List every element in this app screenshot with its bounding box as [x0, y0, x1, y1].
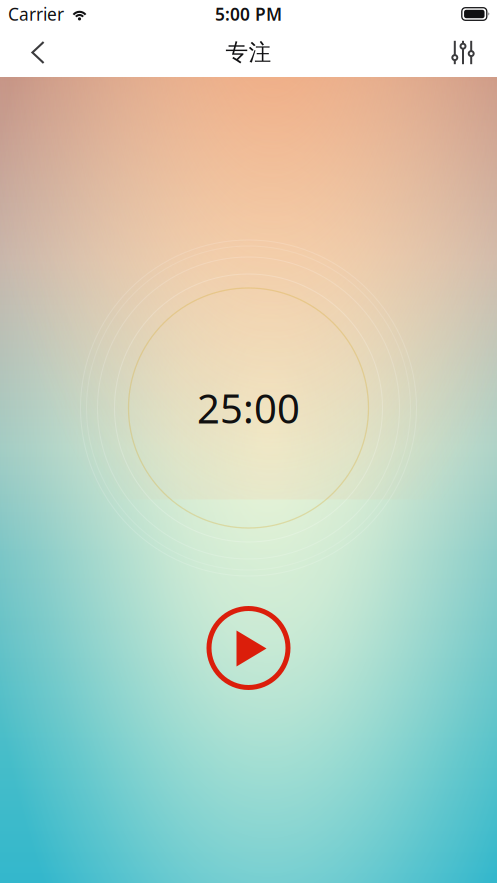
- staticText: Carrier: [8, 2, 64, 25]
- staticText: 5:00 PM: [215, 2, 282, 25]
- button[interactable]: Start focus timer: [203, 603, 293, 693]
- button[interactable]: Timer settings: [441, 28, 485, 77]
- staticText: 专注: [225, 39, 271, 66]
- staticText: 25:00: [197, 381, 300, 434]
- button[interactable]: Back: [16, 28, 60, 77]
